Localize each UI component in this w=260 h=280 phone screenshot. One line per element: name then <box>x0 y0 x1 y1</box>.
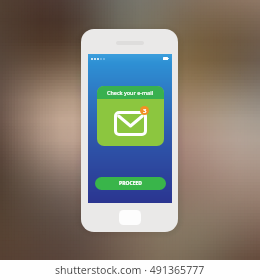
button[interactable]: Check your e-mail <box>97 86 164 146</box>
button[interactable]: PROCEED <box>95 177 166 190</box>
staticText: PROCEED <box>119 180 142 187</box>
staticText: shutterstock.com · 491365777 <box>55 263 205 277</box>
staticText: 3 <box>143 107 147 115</box>
button[interactable]: Home <box>119 210 141 225</box>
staticText: Check your e-mail <box>107 89 154 96</box>
